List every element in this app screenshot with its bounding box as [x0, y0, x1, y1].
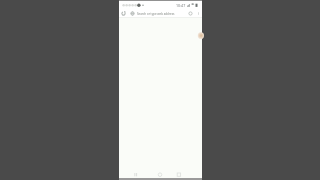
- button[interactable]: More options: [195, 9, 202, 18]
- button[interactable]: Back: [129, 170, 143, 178]
- staticText: Search or type web address: [137, 12, 175, 16]
- button[interactable]: Home: [153, 170, 167, 178]
- button[interactable]: Site information: [128, 9, 137, 18]
- button[interactable]: Reload page: [119, 9, 128, 18]
- button[interactable]: Recent apps: [172, 170, 186, 178]
- staticText: 10:47: [176, 3, 186, 8]
- button[interactable]: Switch or open tabs: [186, 9, 195, 18]
